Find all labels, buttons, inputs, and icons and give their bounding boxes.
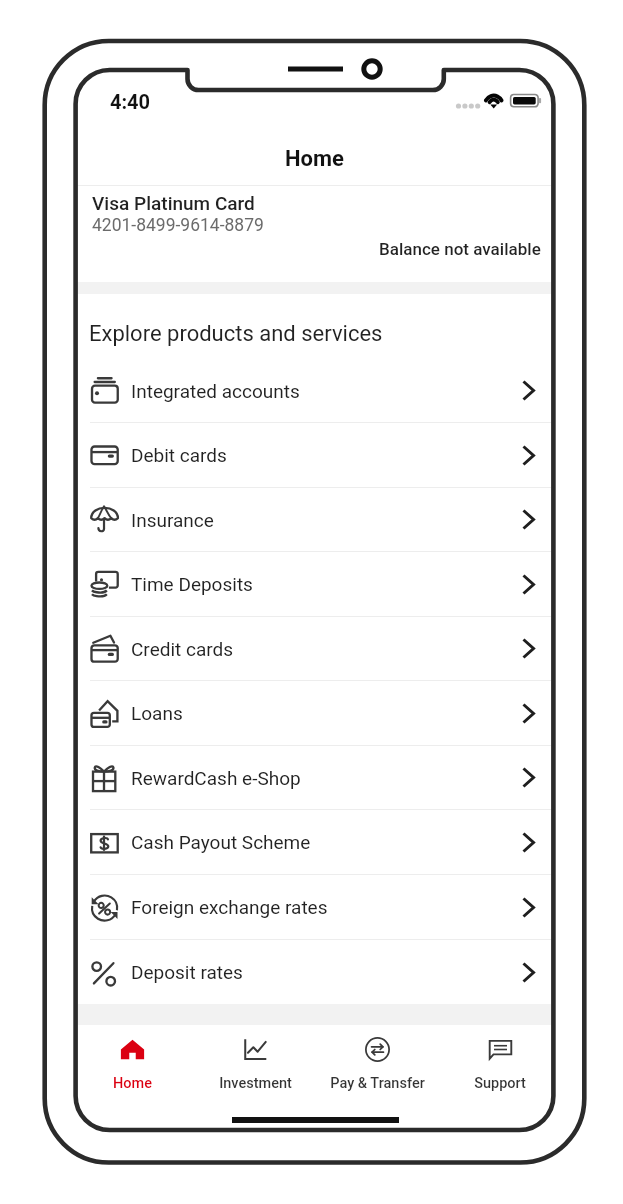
button[interactable]: Deposit rates xyxy=(78,940,551,1004)
staticText: Support xyxy=(474,1075,526,1092)
staticText: Balance not available xyxy=(379,239,541,259)
button[interactable]: Cash Payout Scheme xyxy=(78,810,551,874)
button[interactable]: Investment xyxy=(196,1025,314,1128)
button[interactable]: Insurance xyxy=(78,488,551,551)
staticText: Visa Platinum Card xyxy=(92,192,255,214)
button[interactable]: Support xyxy=(441,1025,559,1128)
button[interactable]: RewardCash e-Shop xyxy=(78,746,551,809)
staticText: Explore products and services xyxy=(89,321,383,347)
button[interactable]: Pay & Transfer xyxy=(318,1025,436,1128)
button[interactable]: Foreign exchange rates xyxy=(78,875,551,939)
button[interactable]: Integrated accounts xyxy=(78,359,551,422)
staticText: Investment xyxy=(219,1075,292,1092)
staticText: 4:40 xyxy=(110,90,151,113)
staticText: Integrated accounts xyxy=(131,380,300,402)
staticText: 4201-8499-9614-8879 xyxy=(92,215,264,236)
button[interactable]: Loans xyxy=(78,681,551,745)
staticText: Pay & Transfer xyxy=(330,1075,425,1092)
staticText: RewardCash e-Shop xyxy=(131,767,301,789)
staticText: Insurance xyxy=(131,509,214,531)
button[interactable]: Credit cards xyxy=(78,617,551,680)
staticText: Home xyxy=(285,146,344,172)
staticText: Time Deposits xyxy=(131,573,253,595)
staticText: Home xyxy=(113,1075,152,1092)
staticText: Cash Payout Scheme xyxy=(131,831,311,853)
button[interactable]: Home xyxy=(73,1025,191,1128)
staticText: Debit cards xyxy=(131,444,227,466)
staticText: Foreign exchange rates xyxy=(131,896,328,918)
button[interactable]: Time Deposits xyxy=(78,552,551,616)
staticText: Credit cards xyxy=(131,638,234,660)
staticText: Deposit rates xyxy=(131,961,243,983)
button[interactable]: Debit cards xyxy=(78,423,551,487)
staticText: Loans xyxy=(131,702,183,724)
